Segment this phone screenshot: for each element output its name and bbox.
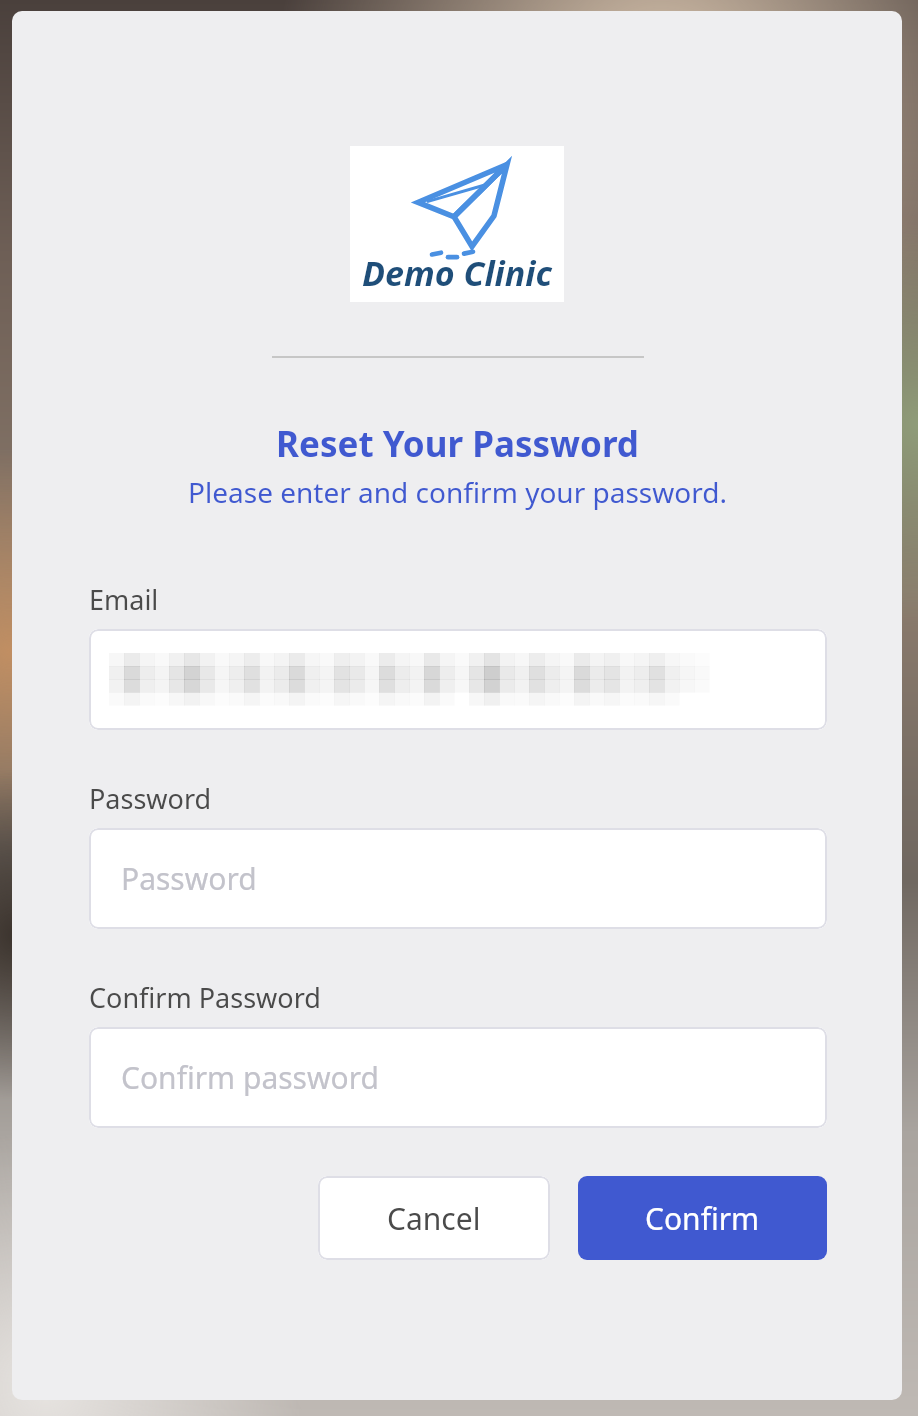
button[interactable]: Confirm <box>578 1176 827 1260</box>
staticText: Password <box>89 780 212 817</box>
staticText: Demo Clinic <box>362 250 552 296</box>
staticText: Confirm password <box>121 1057 379 1098</box>
button[interactable]: Cancel <box>318 1176 550 1260</box>
button[interactable]: Confirm password <box>89 1027 827 1128</box>
staticText: Please enter and confirm your password. <box>188 473 727 511</box>
staticText: Confirm Password <box>89 979 321 1016</box>
staticText: Confirm <box>645 1198 760 1239</box>
staticText: Email <box>89 581 159 618</box>
staticText: Password <box>121 858 257 899</box>
button[interactable] <box>89 629 827 730</box>
staticText: Reset Your Password <box>276 420 639 468</box>
button[interactable]: Password <box>89 828 827 929</box>
staticText: Cancel <box>387 1198 481 1239</box>
